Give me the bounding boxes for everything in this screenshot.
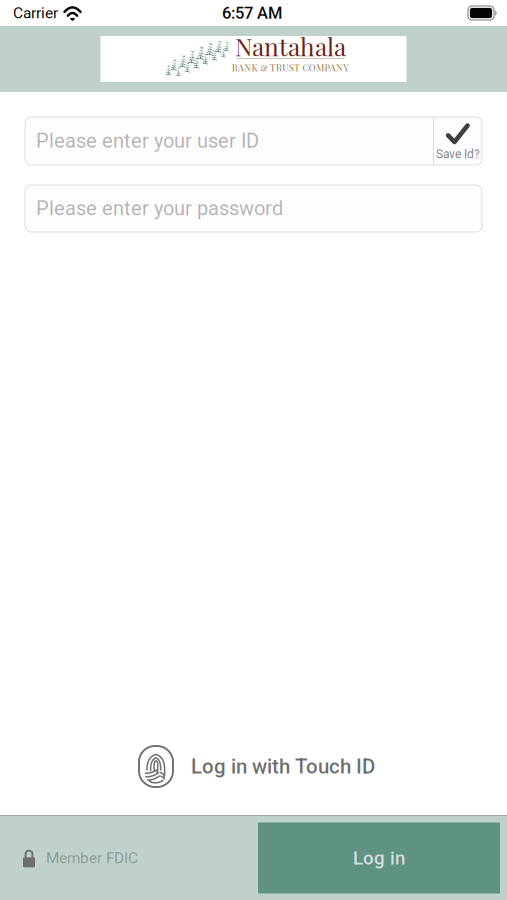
button[interactable]: Save ID (433, 117, 482, 165)
staticText: BANK & TRUST COMPANY (232, 61, 349, 74)
staticText: Log in (353, 847, 405, 869)
staticText: Log in with Touch ID (191, 754, 375, 778)
staticText: Please enter your password (36, 197, 283, 220)
staticText: Please enter your user ID (36, 129, 259, 153)
button[interactable]: Log in (258, 822, 500, 893)
staticText: Nantahala (235, 30, 346, 62)
staticText: Save Id? (436, 147, 480, 161)
staticText: 6:57 AM (222, 3, 282, 23)
staticText: Member FDIC (46, 849, 138, 867)
button[interactable]: Log in with Touch ID (128, 745, 379, 788)
staticText: Carrier (13, 4, 58, 22)
